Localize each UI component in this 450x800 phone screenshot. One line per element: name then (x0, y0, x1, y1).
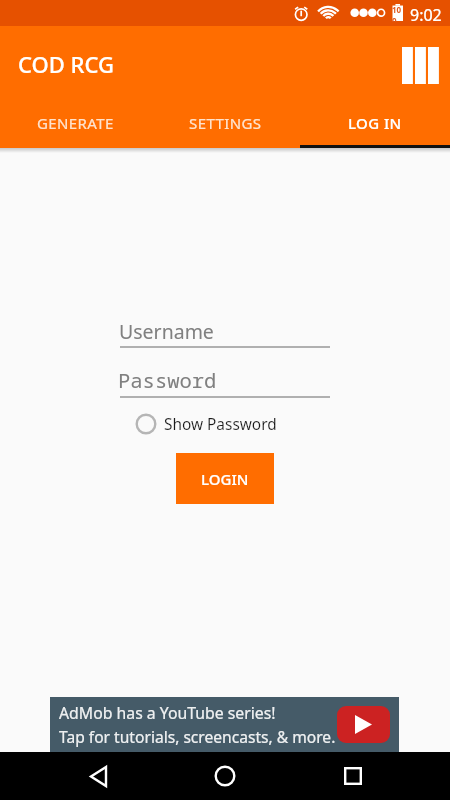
staticText: AdMob has a YouTube series! (59, 702, 276, 724)
staticText: GENERATE (37, 113, 114, 133)
button[interactable]: Home (201, 752, 249, 800)
staticText: SETTINGS (189, 113, 262, 133)
staticText: COD RCG (18, 49, 115, 79)
button[interactable]: Username (120, 314, 330, 348)
button[interactable]: AdMob has a YouTube series! (50, 697, 399, 752)
button[interactable]: LOGIN (176, 453, 274, 504)
staticText: Password (118, 366, 217, 394)
staticText: 9:02 (410, 4, 442, 26)
button[interactable]: Recent apps (329, 752, 377, 800)
staticText: LOGIN (201, 469, 249, 489)
button[interactable]: LOG IN (300, 99, 450, 148)
button[interactable]: SETTINGS (150, 99, 300, 148)
button[interactable]: Show Password (135, 412, 277, 436)
staticText: Show Password (164, 414, 277, 435)
staticText: LOG IN (348, 113, 402, 133)
button[interactable]: Password (120, 362, 330, 398)
staticText: Tap for tutorials, screencasts, & more. (59, 726, 336, 747)
button[interactable]: GENERATE (0, 99, 150, 148)
button[interactable]: Back (74, 752, 122, 800)
button[interactable]: Menu (396, 41, 444, 89)
staticText: 100 (392, 4, 404, 22)
staticText: Username (119, 318, 214, 345)
